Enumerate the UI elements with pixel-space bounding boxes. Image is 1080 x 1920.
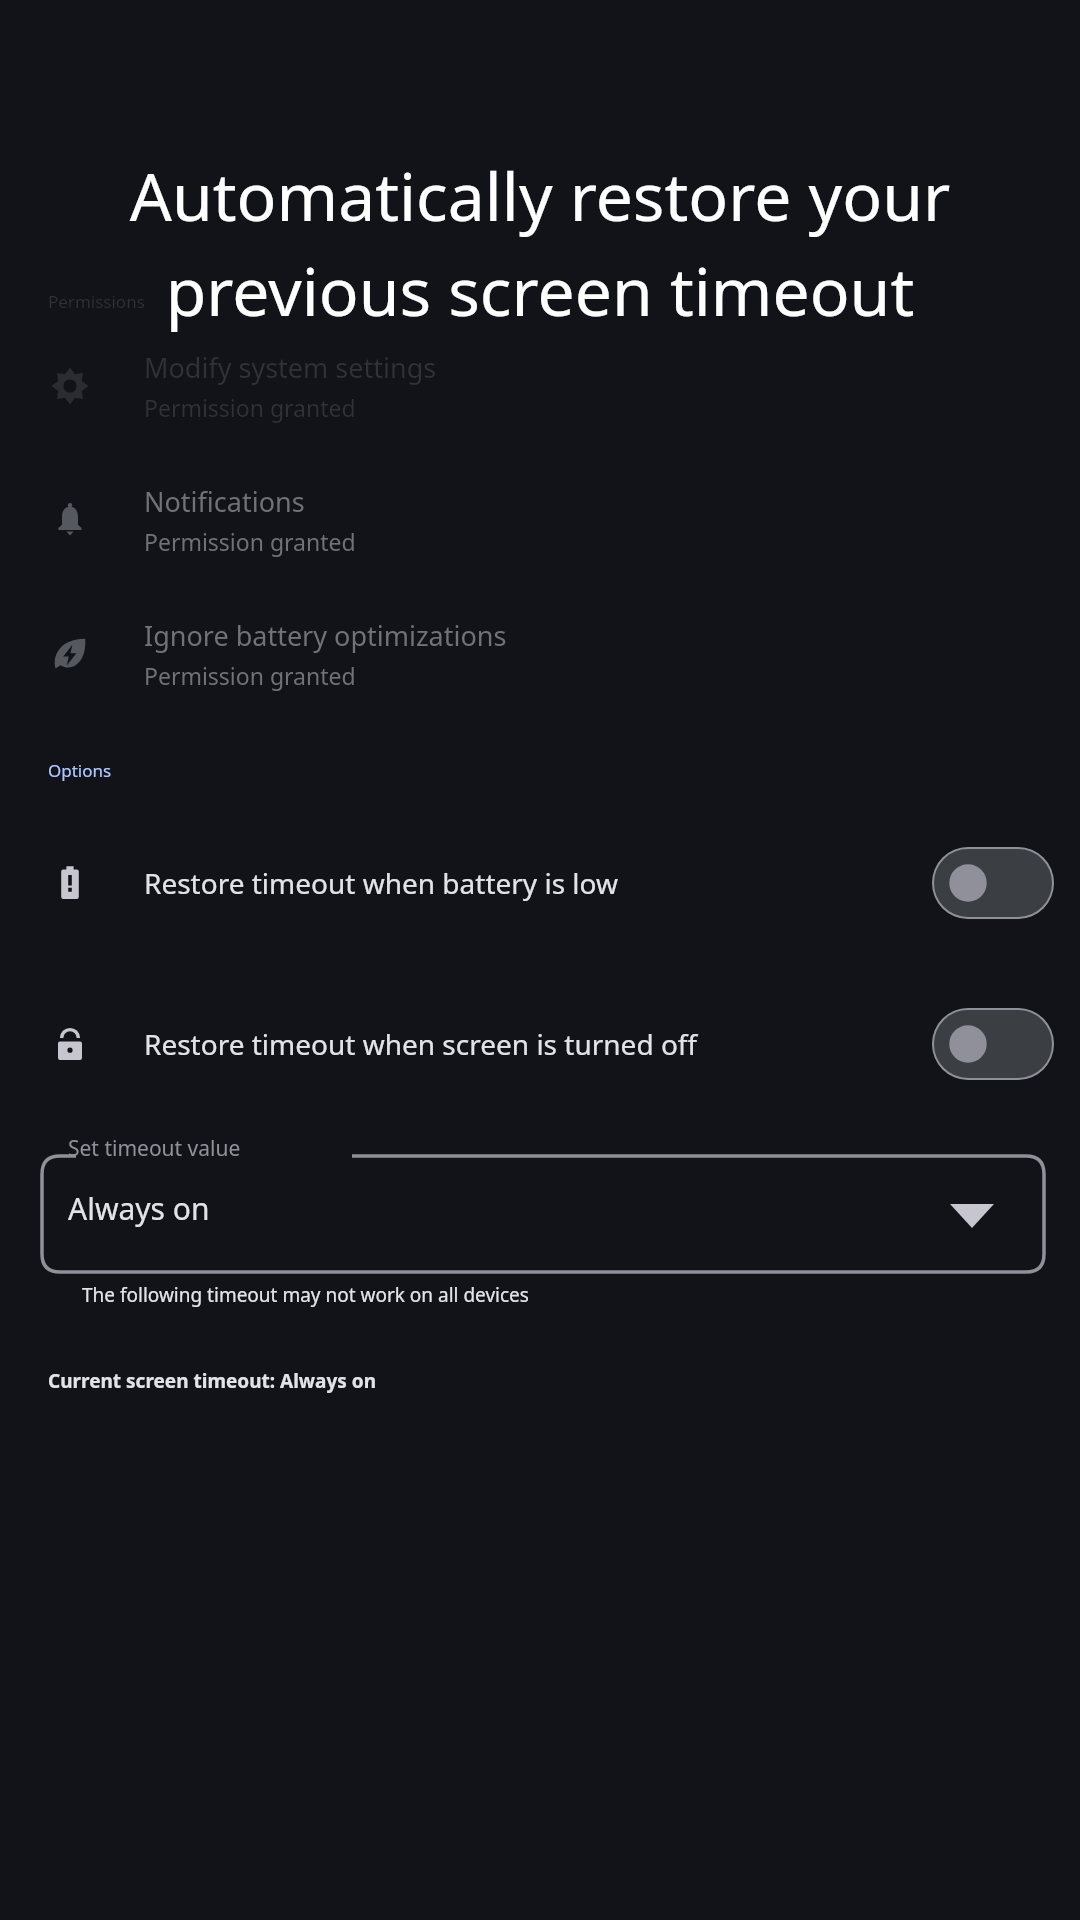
button[interactable]: Set timeout value — [42, 1144, 1044, 1272]
staticText: Ignore battery optimizations — [144, 617, 507, 654]
button[interactable]: Modify system settings — [0, 349, 1080, 423]
staticText: Permission granted — [144, 526, 356, 557]
button[interactable]: Toggle — [932, 847, 1054, 919]
staticText: Set timeout value — [68, 1134, 241, 1163]
staticText: Restore timeout when battery is low — [144, 864, 908, 902]
staticText: Always on — [68, 1188, 210, 1229]
staticText: Current screen timeout: Always on — [48, 1368, 377, 1394]
staticText: Options — [48, 759, 112, 782]
button[interactable]: Toggle — [932, 1008, 1054, 1080]
staticText: Automatically restore your previous scre… — [56, 150, 1024, 335]
staticText: Permissions — [48, 290, 145, 313]
staticText: Restore timeout when screen is turned of… — [144, 1025, 908, 1063]
button[interactable]: Notifications — [0, 483, 1080, 557]
staticText: The following timeout may not work on al… — [82, 1282, 529, 1308]
staticText: Permission granted — [144, 660, 356, 691]
button[interactable]: Restore timeout when screen is turned of… — [0, 984, 1080, 1104]
staticText: Modify system settings — [144, 349, 437, 386]
staticText: Permission granted — [144, 392, 356, 423]
staticText: Notifications — [144, 483, 305, 520]
button[interactable]: Ignore battery optimizations — [0, 617, 1080, 691]
button[interactable]: Restore timeout when battery is low — [0, 840, 1080, 926]
